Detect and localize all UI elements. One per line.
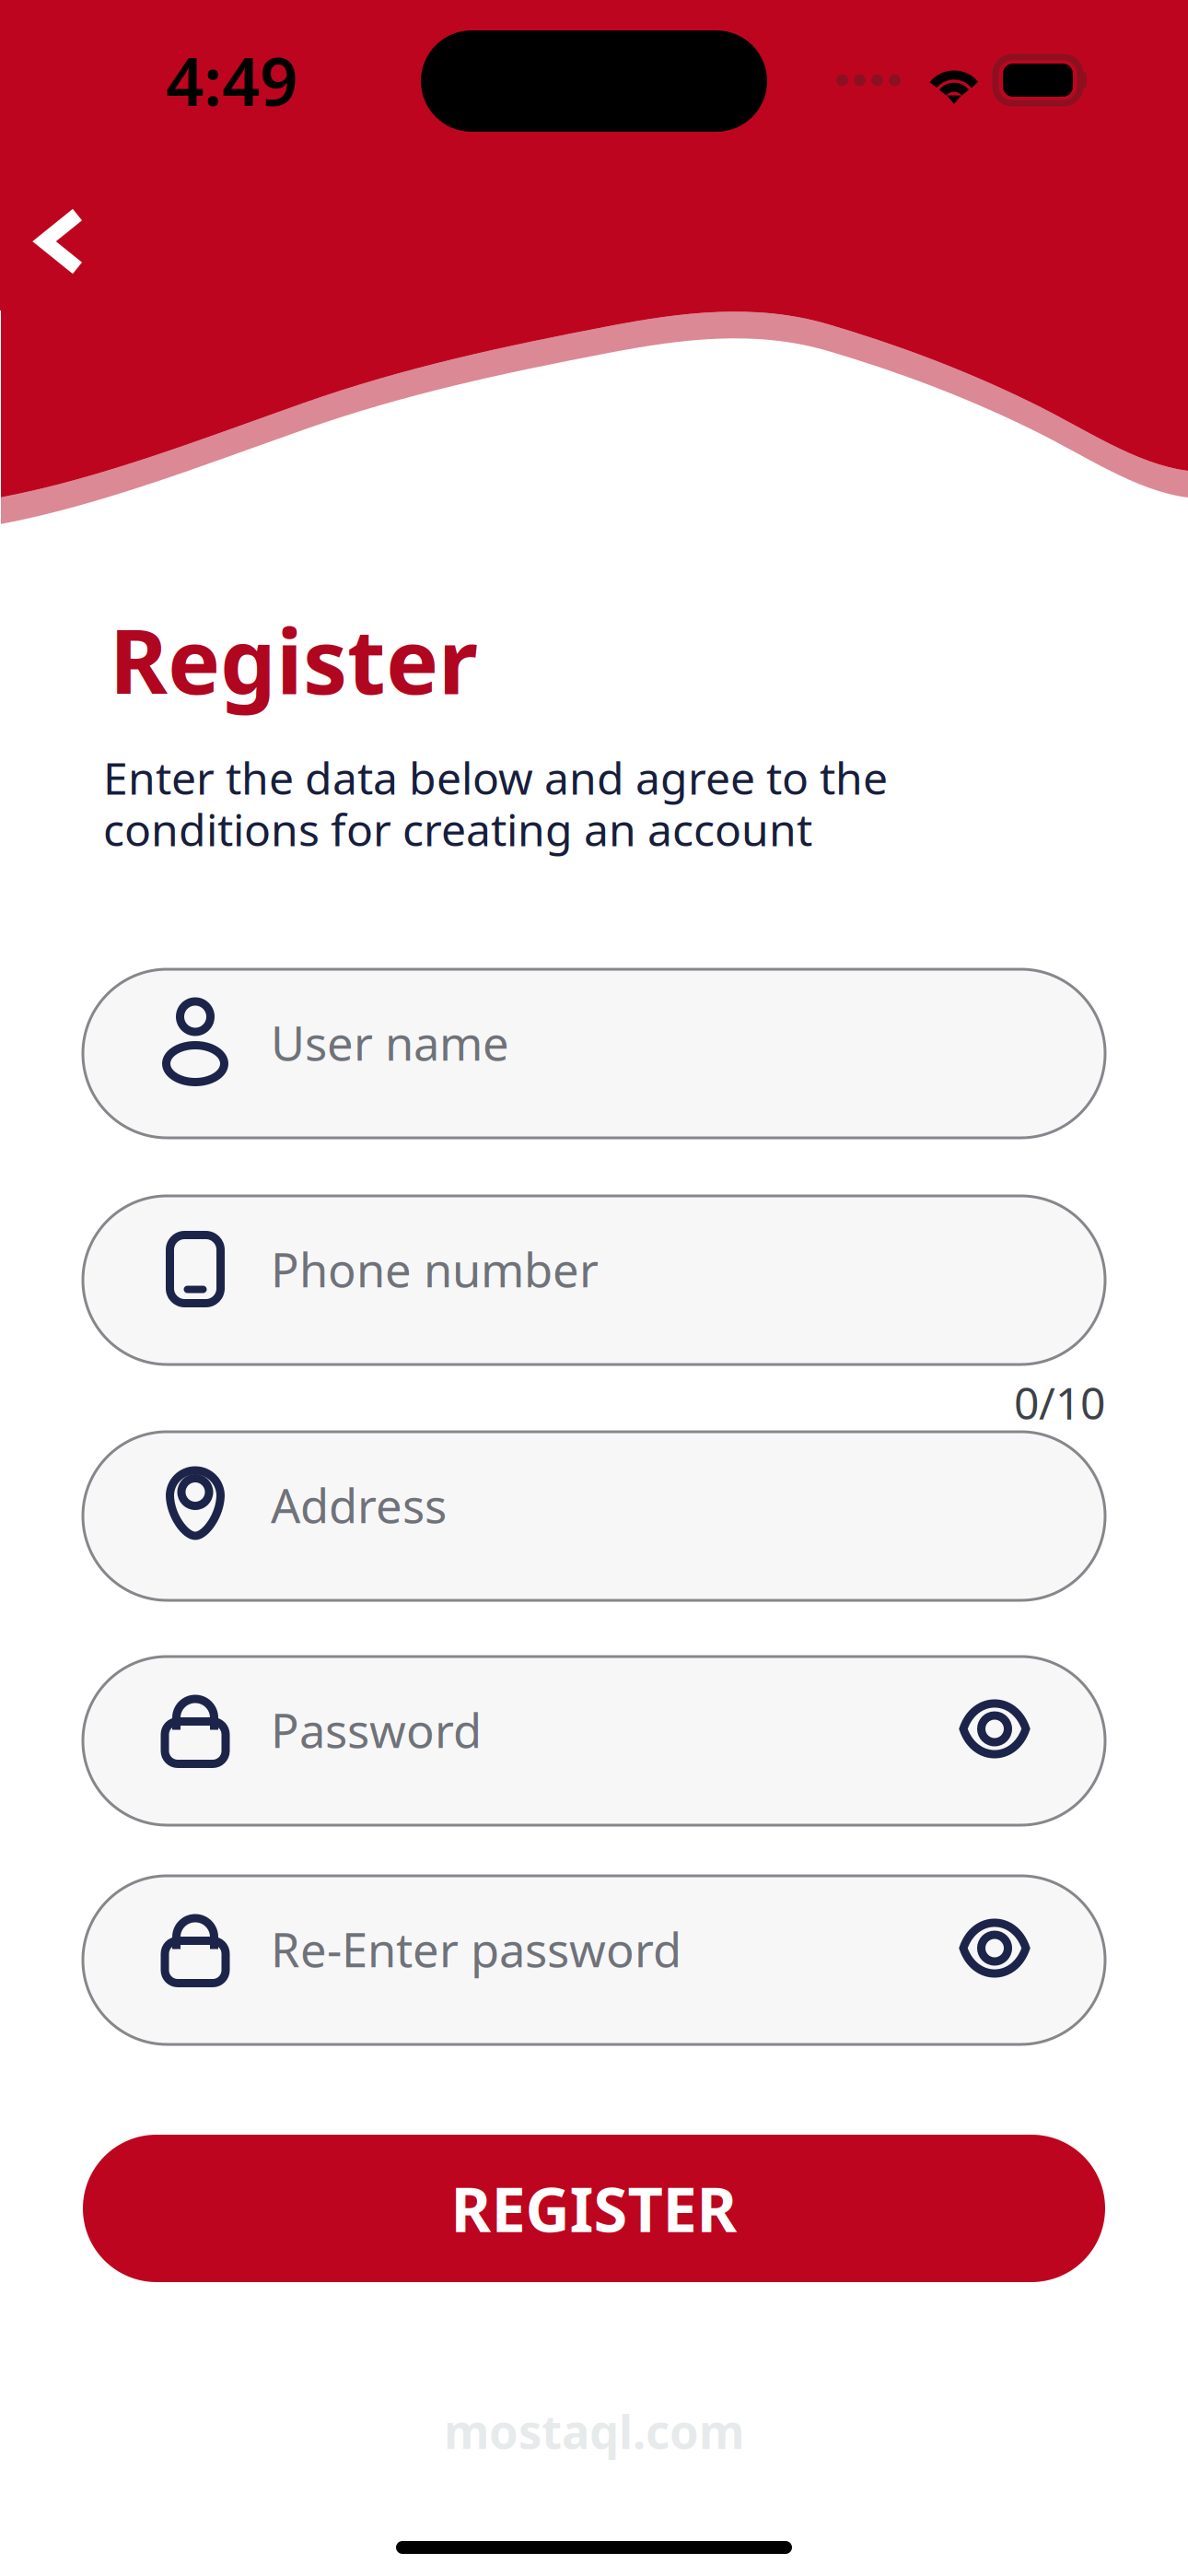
button[interactable]: REGISTER	[83, 2135, 1105, 2282]
button[interactable]: Back	[4, 172, 118, 310]
staticText: Password	[271, 1699, 482, 1761]
staticText: REGISTER	[451, 2168, 737, 2249]
staticText: Re-Enter password	[271, 1918, 681, 1980]
staticText: User name	[271, 1012, 509, 1074]
staticText: Address	[271, 1474, 447, 1536]
staticText: conditions for creating an account	[103, 800, 812, 858]
staticText: 0/10	[1014, 1373, 1105, 1432]
staticText: Phone number	[271, 1238, 599, 1300]
button[interactable]: Show password	[911, 1668, 1105, 1814]
staticText: Enter the data below and agree to the	[103, 748, 888, 807]
staticText: Register	[110, 601, 478, 719]
button[interactable]: Show password	[911, 1887, 1105, 2033]
staticText: 4:49	[166, 36, 297, 124]
staticText: mostaql.com	[444, 2400, 744, 2462]
